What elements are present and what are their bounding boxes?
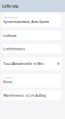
- staticText: Systemstandard, Auto-Sperre: [3, 19, 49, 24]
- staticText: Sperrverhalten: [3, 16, 17, 19]
- staticText: Lieferhinweis: [3, 46, 25, 51]
- button[interactable]: Tour-/Abladestelle in Min.: [2, 57, 61, 70]
- button[interactable]: Warnhinweis ist im Auftrag: [2, 90, 61, 100]
- staticText: Warnhinweis ist im Auftrag: [3, 93, 46, 98]
- staticText: Lieferung: [2, 3, 18, 9]
- button[interactable]: Lieferhinweis: [2, 44, 61, 53]
- button[interactable]: Sperrverhalten: [2, 14, 61, 27]
- button[interactable]: Lieferort: [2, 31, 61, 40]
- staticText: Keine: [3, 80, 12, 84]
- staticText: Tour-/Abladestelle in Min.: [3, 61, 44, 66]
- staticText: Lieferzeit: [3, 76, 13, 79]
- staticText: Lieferort: [3, 33, 16, 38]
- button[interactable]: Lieferzeit: [2, 74, 61, 87]
